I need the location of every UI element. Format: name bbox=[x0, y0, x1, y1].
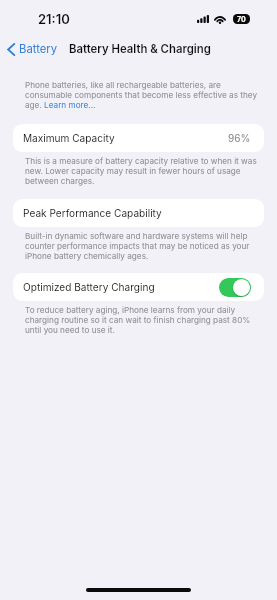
staticText: Battery Health & Charging bbox=[69, 42, 211, 56]
staticText: Optimized Battery Charging bbox=[23, 281, 155, 293]
staticText: Phone batteries, like all rechargeable b… bbox=[25, 80, 263, 110]
button[interactable]: Optimized Battery Charging bbox=[13, 273, 264, 301]
staticText: 70 bbox=[237, 15, 246, 23]
button[interactable]: Maximum Capacity bbox=[13, 124, 264, 152]
staticText: 96% bbox=[228, 132, 251, 144]
staticText: Battery bbox=[19, 42, 58, 56]
staticText: Maximum Capacity bbox=[23, 132, 115, 144]
button[interactable]: Peak Performance Capability bbox=[13, 199, 264, 227]
staticText: 21:10 bbox=[38, 11, 70, 27]
staticText: This is a measure of battery capacity re… bbox=[25, 156, 263, 186]
staticText: Built-in dynamic software and hardware s… bbox=[25, 231, 263, 261]
staticText: To reduce battery aging, iPhone learns f… bbox=[25, 305, 263, 335]
button[interactable]: Optimized Battery Charging toggle bbox=[219, 278, 251, 297]
staticText: Peak Performance Capability bbox=[23, 207, 162, 219]
button[interactable]: Battery bbox=[0, 39, 64, 59]
